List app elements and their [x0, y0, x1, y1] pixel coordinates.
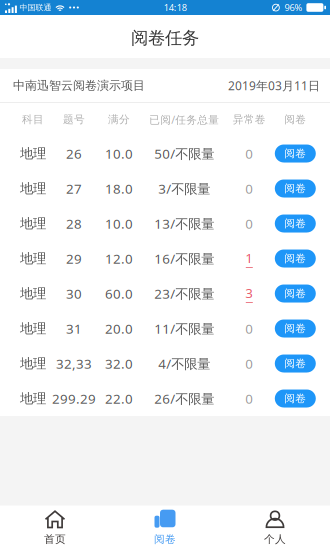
- staticText: 地理: [20, 390, 46, 407]
- staticText: 32,33: [56, 355, 92, 372]
- staticText: 地理: [20, 215, 46, 232]
- staticText: 14:18: [164, 1, 187, 14]
- staticText: 26/不限量: [154, 390, 214, 407]
- staticText: 阅卷任务: [131, 27, 199, 49]
- staticText: 29: [66, 250, 82, 267]
- staticText: 0: [245, 215, 253, 232]
- staticText: 地理: [20, 320, 46, 337]
- staticText: 3: [245, 284, 253, 302]
- button[interactable]: 首页: [0, 506, 110, 550]
- staticText: 60.0: [105, 285, 133, 302]
- staticText: 地理: [20, 145, 46, 162]
- staticText: 首页: [44, 533, 66, 546]
- button[interactable]: 个人: [220, 506, 330, 550]
- button[interactable]: 阅卷: [275, 214, 316, 232]
- button[interactable]: 阅卷: [275, 354, 316, 372]
- staticText: 50/不限量: [154, 145, 214, 162]
- staticText: 0: [245, 355, 253, 372]
- staticText: 2019年03月11日: [228, 77, 320, 93]
- staticText: 0: [245, 180, 253, 197]
- staticText: 20.0: [105, 320, 133, 337]
- staticText: 中国联通: [19, 3, 51, 12]
- staticText: 3/不限量: [158, 180, 210, 197]
- staticText: 10.0: [105, 145, 133, 162]
- staticText: 96%: [284, 1, 302, 14]
- staticText: 地理: [20, 285, 46, 302]
- staticText: 16/不限量: [154, 250, 214, 267]
- staticText: 题号: [63, 113, 85, 126]
- staticText: 4/不限量: [158, 355, 210, 372]
- staticText: 11/不限量: [154, 320, 214, 337]
- staticText: 18.0: [105, 180, 133, 197]
- button[interactable]: 阅卷: [110, 506, 220, 550]
- staticText: 异常卷: [233, 113, 266, 126]
- staticText: 31: [66, 320, 82, 337]
- staticText: 阅卷: [284, 252, 306, 265]
- staticText: 阅卷: [284, 287, 306, 300]
- staticText: 地理: [20, 180, 46, 197]
- staticText: 地理: [20, 250, 46, 267]
- button[interactable]: 阅卷: [275, 179, 316, 197]
- staticText: 阅卷: [284, 322, 306, 335]
- staticText: 阅卷: [284, 182, 306, 195]
- staticText: 个人: [264, 533, 286, 546]
- staticText: 阅卷: [284, 392, 306, 405]
- staticText: 阅卷: [284, 217, 306, 230]
- staticText: 26: [66, 145, 82, 162]
- staticText: 0: [245, 390, 253, 407]
- staticText: 0: [245, 320, 253, 337]
- button[interactable]: 阅卷: [275, 249, 316, 267]
- staticText: 30: [66, 285, 82, 302]
- staticText: 0: [245, 145, 253, 162]
- staticText: 23/不限量: [154, 285, 214, 302]
- button[interactable]: 阅卷: [275, 284, 316, 302]
- staticText: 地理: [20, 355, 46, 372]
- staticText: 科目: [22, 113, 44, 126]
- staticText: 阅卷: [284, 113, 306, 126]
- staticText: 阅卷: [284, 147, 306, 160]
- staticText: 27: [66, 180, 82, 197]
- staticText: 中南迅智云阅卷演示项目: [13, 78, 145, 93]
- staticText: 满分: [108, 113, 130, 126]
- button[interactable]: 阅卷: [275, 319, 316, 337]
- staticText: 12.0: [105, 250, 133, 267]
- staticText: 阅卷: [154, 533, 176, 546]
- staticText: 阅卷: [284, 357, 306, 370]
- staticText: 13/不限量: [154, 215, 214, 232]
- staticText: 10.0: [105, 215, 133, 232]
- staticText: 已阅/任务总量: [149, 112, 219, 127]
- staticText: 32.0: [105, 355, 133, 372]
- staticText: 299.29: [52, 390, 96, 407]
- button[interactable]: 阅卷: [275, 389, 316, 407]
- button[interactable]: 阅卷: [275, 144, 316, 162]
- staticText: 1: [245, 249, 253, 267]
- staticText: 22.0: [105, 390, 133, 407]
- staticText: 28: [66, 215, 82, 232]
